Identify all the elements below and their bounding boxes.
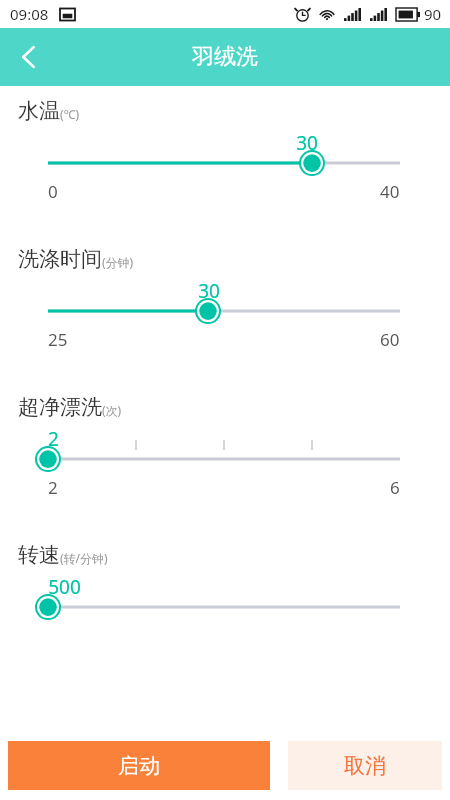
staticText: 羽绒洗: [192, 43, 258, 71]
staticText: 取消: [344, 753, 386, 779]
staticText: 30: [296, 130, 318, 156]
button[interactable]: 2: [48, 426, 400, 472]
staticText: 0: [48, 180, 58, 203]
staticText: 500: [48, 574, 81, 600]
staticText: 6: [390, 476, 400, 499]
staticText: 2: [48, 476, 58, 499]
button[interactable]: 30: [48, 130, 400, 176]
staticText: 30: [198, 278, 220, 304]
staticText: (℃): [60, 106, 80, 122]
staticText: 2: [48, 426, 59, 452]
staticText: 25: [48, 328, 68, 351]
button[interactable]: 启动: [8, 741, 270, 790]
button[interactable]: 30: [48, 278, 400, 324]
staticText: (次): [102, 402, 122, 418]
staticText: 09:08: [10, 4, 49, 24]
staticText: 60: [380, 328, 400, 351]
staticText: 水温: [18, 98, 60, 124]
button[interactable]: 取消: [288, 741, 442, 790]
staticText: 40: [380, 180, 400, 203]
staticText: 转速: [18, 542, 60, 568]
button[interactable]: Back: [0, 28, 58, 86]
button[interactable]: 500: [48, 574, 400, 620]
staticText: 洗涤时间: [18, 246, 102, 272]
staticText: 启动: [118, 753, 160, 779]
staticText: (转/分钟): [60, 550, 108, 566]
staticText: 90: [424, 4, 442, 24]
staticText: 超净漂洗: [18, 394, 102, 420]
staticText: (分钟): [102, 254, 134, 270]
